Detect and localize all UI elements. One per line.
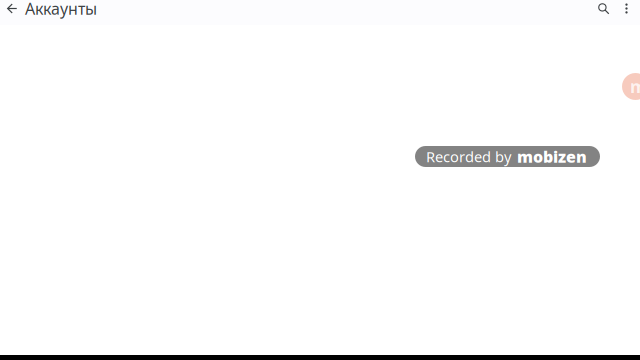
button[interactable]: More options [621,0,632,17]
staticText: mobizen [517,146,587,167]
staticText: Recorded by [426,147,511,166]
button[interactable]: Search [595,0,612,17]
staticText: m [630,75,640,98]
button[interactable]: Mobizen recorder [622,73,640,100]
button[interactable]: Back [4,0,20,17]
staticText: Аккаунты [25,0,97,19]
